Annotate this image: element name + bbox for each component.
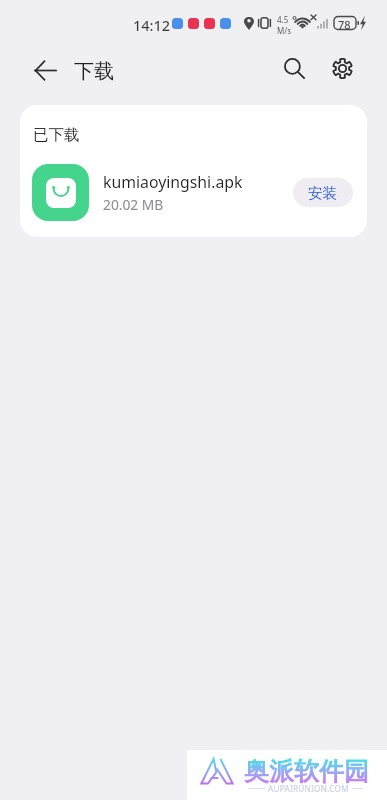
staticText: 奥派软件园 [244,756,369,787]
staticText: 已下载 [33,125,80,145]
staticText: 安装 [308,184,338,202]
button[interactable]: Search [274,48,314,88]
staticText: AUPAIRUNION.COM [268,783,349,794]
staticText: 14:12 [133,15,171,35]
staticText: M/s [277,25,292,36]
staticText: 4.5 [277,14,289,25]
button[interactable]: Back [23,48,67,92]
staticText: 78 [338,17,351,32]
staticText: 下载 [74,59,114,84]
button[interactable]: Settings [322,48,362,88]
staticText: 20.02 MB [103,195,164,214]
staticText: kumiaoyingshi.apk [103,171,243,193]
button[interactable]: 安装 [293,178,353,207]
button[interactable]: kumiaoyingshi.apk [20,156,367,228]
